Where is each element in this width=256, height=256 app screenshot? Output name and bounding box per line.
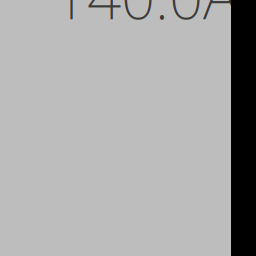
- staticText: 140.0A: [53, 0, 238, 37]
